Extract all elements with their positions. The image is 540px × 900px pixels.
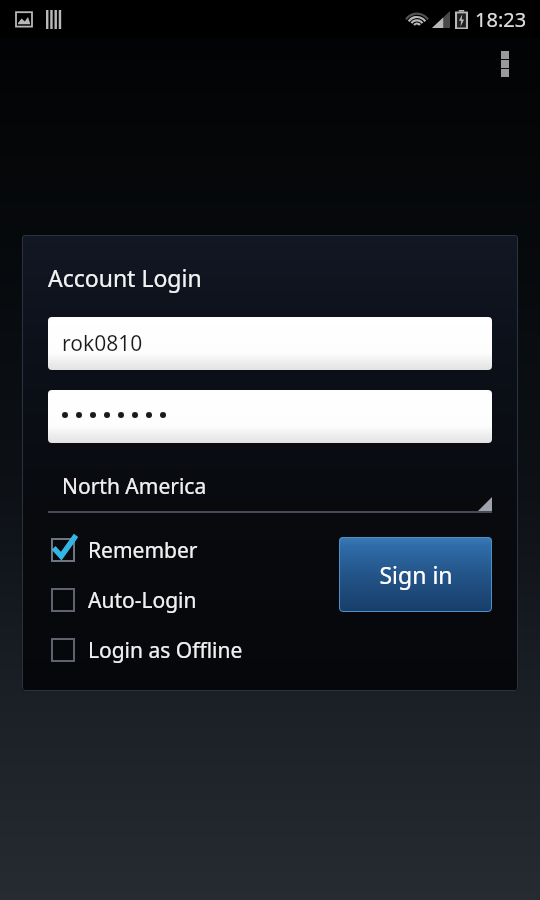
button[interactable]: Remember bbox=[48, 535, 198, 565]
staticText: 18:23 bbox=[475, 6, 527, 33]
staticText: Account Login bbox=[48, 262, 202, 293]
staticText: Remember bbox=[88, 536, 198, 565]
button[interactable]: rok0810 bbox=[48, 317, 492, 370]
button[interactable]: Login as Offline bbox=[48, 635, 243, 665]
button[interactable]: Sign in bbox=[339, 537, 492, 612]
staticText: Auto-Login bbox=[88, 586, 197, 615]
button[interactable]: Auto-Login bbox=[48, 585, 197, 615]
staticText: rok0810 bbox=[62, 329, 143, 358]
staticText: Sign in bbox=[379, 559, 453, 590]
button[interactable]: More options bbox=[490, 42, 520, 86]
button[interactable]: Region selector bbox=[48, 465, 492, 513]
staticText: North America bbox=[62, 472, 207, 501]
button[interactable] bbox=[48, 390, 492, 443]
staticText: Login as Offline bbox=[88, 636, 243, 665]
